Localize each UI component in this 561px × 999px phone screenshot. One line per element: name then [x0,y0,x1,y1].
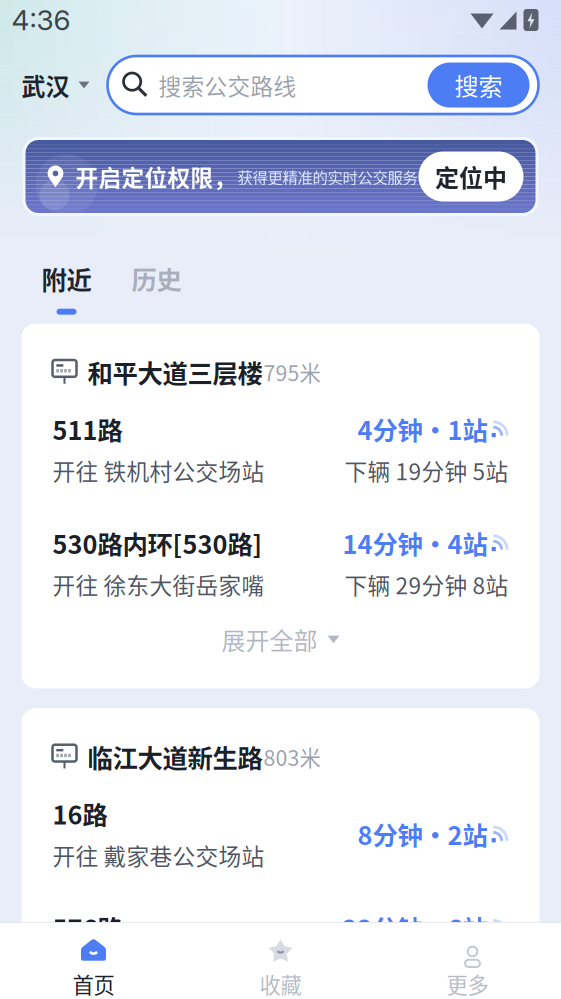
staticText: 更多 [446,969,488,999]
button[interactable]: 收藏 [187,922,374,999]
button[interactable]: 武汉 [0,56,107,114]
staticText: 803米 [263,741,320,772]
staticText: 14分钟・4站 [342,524,487,561]
button[interactable]: 历史 [111,260,201,315]
staticText: 收藏 [259,969,301,999]
button[interactable]: 更多 [374,922,561,999]
staticText: 4:36 [11,3,70,37]
button[interactable]: 展开全部 [52,596,508,660]
staticText: 搜索公交路线 [158,69,296,101]
staticText: 4分钟・1站 [357,410,487,447]
staticText: 搜索 [454,68,502,102]
staticText: 511路 [52,410,122,447]
staticText: 和平大道三层楼 [87,354,262,390]
staticText: 开启定位权限， [75,160,236,193]
staticText: 795米 [263,357,320,387]
button[interactable]: 附近 [21,260,111,315]
button[interactable]: 开启定位权限， [22,137,538,216]
staticText: 历史 [131,260,181,297]
staticText: 576路 [52,909,122,946]
staticText: 开往 武汉火车站西广场 [52,953,287,985]
button[interactable]: 搜索公交路线 [107,56,538,114]
staticText: 下辆 19分钟 5站 [344,454,508,487]
staticText: 展开全部 [221,622,317,657]
staticText: 获得更精准的实时公交服务 [237,165,417,188]
staticText: 临江大道新生路 [87,738,262,775]
staticText: 首页 [72,969,114,999]
staticText: 定位中 [435,159,507,194]
staticText: 开往 铁机村公交场站 [52,454,264,487]
staticText: 16路 [52,795,107,832]
staticText: 8分钟・2站 [357,816,487,852]
staticText: 530路内环[530路] [52,524,262,561]
staticText: 下辆 29分钟 8站 [344,568,508,601]
staticText: 下辆 41分钟 9站 [344,953,508,985]
staticText: 22分钟・6站 [342,909,487,946]
button[interactable]: 首页 [0,922,187,999]
staticText: 开往 戴家巷公交场站 [52,839,264,871]
staticText: 武汉 [21,68,69,102]
staticText: 开往 徐东大街岳家嘴 [52,568,264,601]
staticText: 附近 [41,260,91,297]
